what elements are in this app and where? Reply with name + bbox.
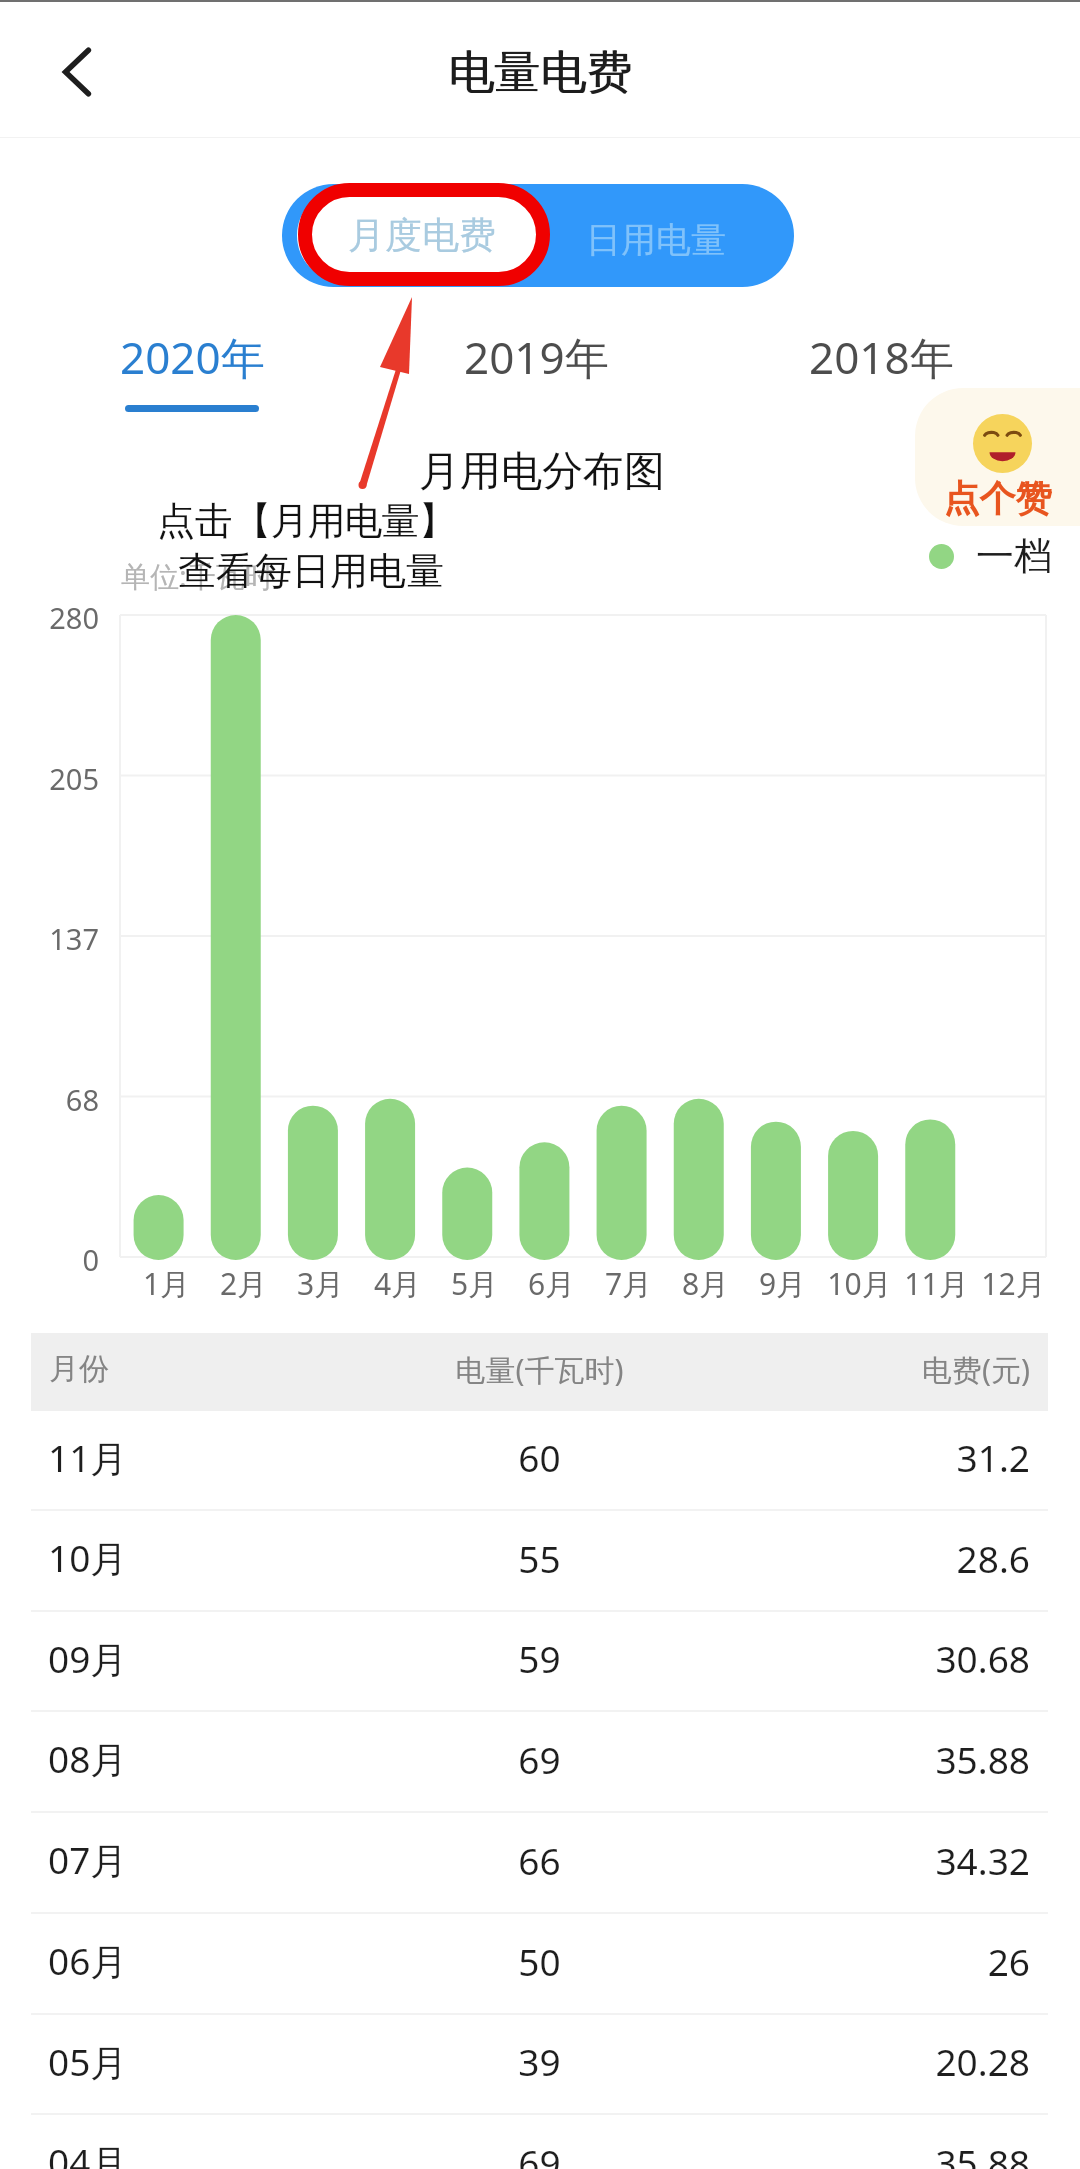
staticText: 09月 <box>48 1633 370 1684</box>
staticText: 20.28 <box>709 2036 1030 2086</box>
staticText: 电量电费 <box>449 44 633 102</box>
staticText: 查看每日用电量 <box>178 547 444 595</box>
staticText: 07月 <box>48 1834 370 1885</box>
staticText: 点个赞 <box>915 476 1080 521</box>
button[interactable]: 06月 <box>31 1914 1048 2015</box>
staticText: 06月 <box>48 1935 370 1986</box>
button[interactable]: 11月 <box>31 1411 1048 1511</box>
staticText: 电费(元) <box>709 1349 1030 1390</box>
staticText: 2月 <box>205 1263 282 1304</box>
button[interactable]: 日用电量 <box>528 188 784 287</box>
staticText: 月度电费 <box>348 212 496 259</box>
staticText: 35.88 <box>709 2137 1030 2169</box>
staticText: 11月 <box>48 1432 370 1483</box>
staticText: 10月 <box>48 1532 370 1583</box>
button[interactable]: 2020年 <box>20 327 364 417</box>
staticText: 34.32 <box>709 1835 1030 1885</box>
staticText: 66 <box>370 1835 709 1885</box>
staticText: 6月 <box>513 1263 590 1304</box>
staticText: 4月 <box>359 1263 436 1304</box>
staticText: 11月 <box>898 1263 975 1304</box>
staticText: 2020年 <box>120 327 265 387</box>
staticText: 单位:千瓦时 <box>121 556 274 596</box>
staticText: 电量(千瓦时) <box>370 1349 709 1390</box>
button[interactable]: 07月 <box>31 1813 1048 1914</box>
staticText: 点击 <box>157 497 233 545</box>
staticText: 04月 <box>48 2136 370 2169</box>
staticText: 电量电费 <box>448 44 632 102</box>
staticText: 7月 <box>590 1263 667 1304</box>
staticText: 59 <box>370 1633 709 1683</box>
staticText: 1月 <box>128 1263 205 1304</box>
staticText: 55 <box>370 1533 709 1583</box>
staticText: 137 <box>0 919 99 958</box>
staticText: 30.68 <box>709 1633 1030 1683</box>
staticText: 60 <box>370 1432 709 1482</box>
button[interactable]: 09月 <box>31 1612 1048 1712</box>
button[interactable]: 08月 <box>31 1712 1048 1813</box>
staticText: 一档 <box>976 532 1052 580</box>
button[interactable]: Like <box>915 388 1080 526</box>
staticText: 10月 <box>821 1263 898 1304</box>
staticText: 月份 <box>49 1350 370 1388</box>
staticText: 0 <box>0 1240 99 1279</box>
button[interactable]: 月度电费 <box>297 190 546 281</box>
staticText: 【月用电量】 <box>234 497 456 545</box>
button[interactable]: 04月 <box>31 2115 1048 2169</box>
staticText: 280 <box>0 598 99 637</box>
staticText: 05月 <box>48 2036 370 2087</box>
staticText: 2018年 <box>809 327 954 387</box>
staticText: 26 <box>709 1936 1030 1986</box>
staticText: 12月 <box>975 1263 1052 1304</box>
button[interactable]: 10月 <box>31 1511 1048 1612</box>
button[interactable]: 2019年 <box>364 327 709 417</box>
staticText: 日用电量 <box>586 218 726 262</box>
staticText: 31.2 <box>709 1432 1030 1482</box>
staticText: 3月 <box>282 1263 359 1304</box>
button[interactable]: Back <box>36 30 120 114</box>
staticText: 9月 <box>744 1263 821 1304</box>
staticText: 8月 <box>667 1263 744 1304</box>
staticText: 68 <box>0 1080 99 1119</box>
staticText: 69 <box>370 2137 709 2169</box>
button[interactable]: 2018年 <box>709 327 1054 417</box>
staticText: 5月 <box>436 1263 513 1304</box>
staticText: 50 <box>370 1936 709 1986</box>
staticText: 2019年 <box>464 327 609 387</box>
button[interactable]: 05月 <box>31 2015 1048 2115</box>
staticText: 205 <box>0 759 99 798</box>
staticText: 39 <box>370 2036 709 2086</box>
staticText: 35.88 <box>709 1734 1030 1784</box>
staticText: 28.6 <box>709 1533 1030 1583</box>
staticText: 69 <box>370 1734 709 1784</box>
staticText: 08月 <box>48 1733 370 1784</box>
staticText: 月用电分布图 <box>419 446 665 498</box>
